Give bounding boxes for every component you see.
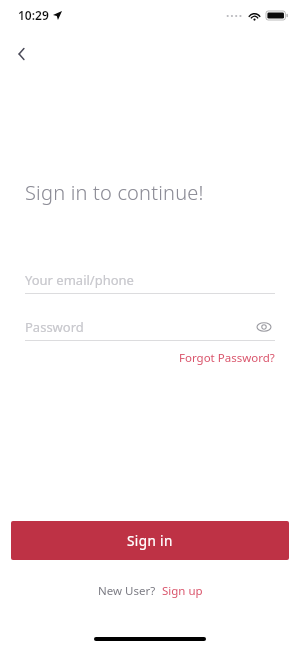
- button[interactable]: Sign up: [162, 583, 203, 599]
- staticText: Sign in: [127, 532, 173, 550]
- staticText: Password: [25, 318, 84, 336]
- button[interactable]: Back: [8, 40, 36, 68]
- button[interactable]: Password: [25, 315, 275, 339]
- button[interactable]: Your email/phone: [25, 268, 275, 292]
- staticText: 10:29: [18, 7, 49, 23]
- staticText: Forgot Password?: [179, 350, 275, 366]
- staticText: Sign up: [162, 583, 203, 599]
- staticText: Your email/phone: [25, 271, 134, 289]
- button[interactable]: Forgot Password?: [179, 350, 275, 366]
- staticText: New User?: [98, 583, 156, 599]
- button[interactable]: Show password: [253, 316, 275, 338]
- staticText: Sign in to continue!: [25, 179, 204, 206]
- button[interactable]: Sign in: [11, 521, 289, 560]
